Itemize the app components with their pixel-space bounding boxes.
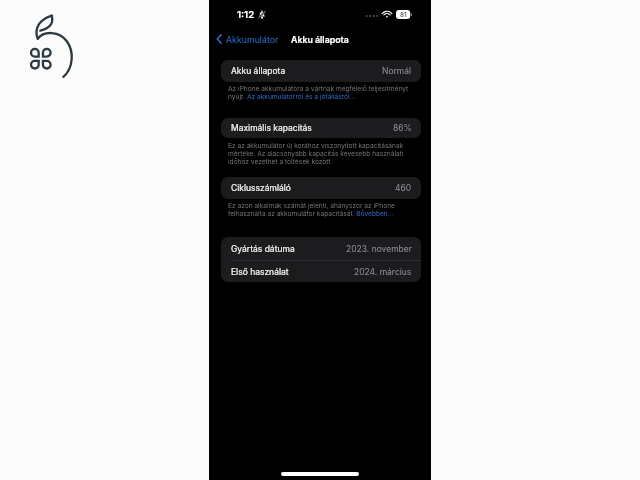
staticText: Ez azon alkalmak számát jelenti, ahánysz…	[228, 202, 416, 218]
staticText: Az iPhone akkumulátora a vártnak megfele…	[228, 85, 416, 101]
button[interactable]: Maximális kapacitás	[221, 118, 421, 138]
button[interactable]: Ciklusszámláló	[221, 177, 421, 199]
staticText: 81	[400, 11, 407, 19]
staticText: Első használat	[231, 267, 289, 277]
other: Brand logo	[28, 13, 72, 81]
staticText: 2023. november	[346, 244, 412, 254]
staticText: 86%	[393, 123, 412, 133]
button[interactable]: Első használat	[231, 261, 412, 282]
staticText: 2024. március	[354, 267, 412, 277]
staticText: Gyártás dátuma	[231, 244, 295, 254]
staticText: Ciklusszámláló	[231, 183, 291, 193]
staticText: 1:12	[237, 9, 255, 20]
staticText: Akkumulátor	[226, 34, 279, 45]
staticText: Ez az akkumulátor új korához viszonyítot…	[228, 142, 416, 166]
button[interactable]: Akku állapota	[221, 60, 421, 82]
staticText: Maximális kapacitás	[231, 123, 312, 133]
staticText: Akku állapota	[231, 66, 286, 76]
staticText: Normál	[382, 66, 412, 76]
button[interactable]: Gyártás dátuma	[231, 237, 412, 260]
staticText: 460	[395, 183, 412, 193]
staticText: Akku állapota	[291, 34, 349, 45]
button[interactable]: Akkumulátor	[216, 32, 279, 46]
